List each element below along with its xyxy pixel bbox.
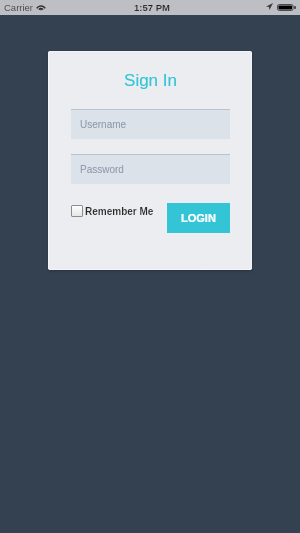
- staticText: Sign In: [71, 71, 230, 90]
- staticText: Remember Me: [85, 206, 154, 217]
- other: Location: [266, 3, 273, 10]
- button[interactable]: LOGIN: [167, 203, 230, 233]
- staticText: Password: [80, 164, 124, 175]
- staticText: Carrier: [4, 2, 34, 13]
- button[interactable]: Password: [71, 155, 230, 184]
- other: Wi-Fi: [36, 3, 46, 11]
- staticText: 1:57 PM: [134, 2, 170, 13]
- other: Battery: [277, 4, 296, 11]
- staticText: LOGIN: [181, 212, 216, 224]
- button[interactable]: Remember Me: [71, 205, 154, 217]
- button[interactable]: Username: [71, 110, 230, 139]
- staticText: Username: [80, 119, 127, 130]
